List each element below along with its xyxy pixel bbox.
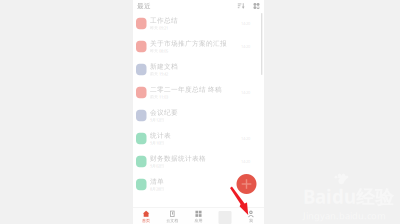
staticText: 首页	[142, 218, 150, 223]
staticText: 昨天 09:21	[150, 25, 168, 30]
button[interactable]: 新建文档	[133, 58, 264, 81]
staticText: 统计表	[150, 131, 171, 140]
staticText: 9月02日	[150, 163, 164, 168]
staticText: 14:20	[241, 44, 250, 49]
staticText: 应用	[194, 218, 202, 223]
staticText: 云文档	[166, 218, 178, 223]
button[interactable]: 会议纪要	[133, 104, 264, 127]
staticText: 9月10日	[150, 140, 164, 145]
staticText: 14:20	[241, 90, 250, 95]
button[interactable]: More	[212, 208, 238, 224]
button[interactable]: Switch layout	[253, 2, 260, 9]
staticText: 二零二一年度总结 终稿	[150, 85, 222, 94]
staticText: 工作总结	[150, 16, 178, 25]
staticText: 8月28日	[150, 186, 164, 191]
button[interactable]: 工作总结	[133, 12, 264, 35]
button[interactable]: 首页	[133, 208, 159, 224]
staticText: 前天 11:03	[150, 94, 168, 99]
button[interactable]: 统计表	[133, 127, 264, 150]
staticText: 我	[249, 218, 253, 223]
staticText: 14:20	[241, 182, 250, 187]
button[interactable]: 我	[238, 208, 264, 224]
button[interactable]: 云文档	[159, 208, 185, 224]
staticText: 昨天 08:05	[150, 48, 168, 53]
staticText: 新建文档	[150, 62, 178, 71]
staticText: 清单	[150, 177, 164, 186]
button[interactable]: New document	[236, 174, 256, 194]
staticText: 14:20	[241, 136, 250, 141]
staticText: 14:20	[241, 21, 250, 26]
staticText: 前天 19:42	[150, 71, 168, 76]
button[interactable]: 财务数据统计表格	[133, 150, 264, 173]
button[interactable]: 关于市场推广方案的汇报	[133, 35, 264, 58]
staticText: 关于市场推广方案的汇报	[150, 39, 227, 48]
button[interactable]: 清单	[133, 173, 264, 196]
staticText: 最近	[137, 2, 151, 10]
button[interactable]: 二零二一年度总结 终稿	[133, 81, 264, 104]
staticText: 会议纪要	[150, 108, 178, 117]
staticText: 财务数据统计表格	[150, 154, 206, 163]
button[interactable]: Sort	[237, 2, 244, 9]
staticText: 9月12日	[150, 117, 164, 122]
staticText: 14:20	[241, 159, 250, 164]
button[interactable]: 应用	[185, 208, 212, 224]
